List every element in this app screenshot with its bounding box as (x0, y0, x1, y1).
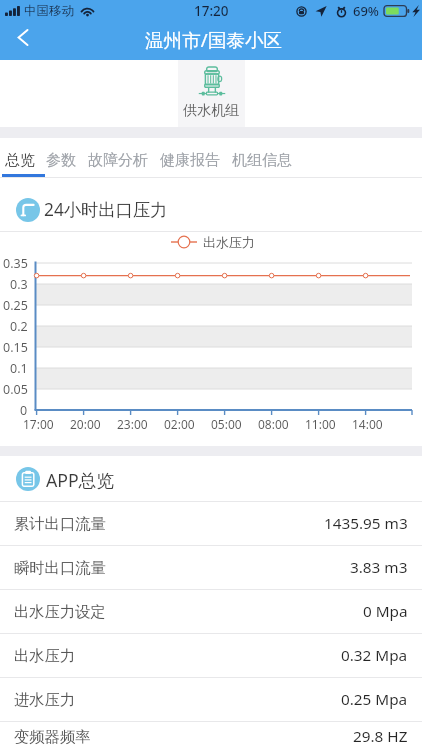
staticText: 0 (20, 402, 28, 418)
staticText: 温州市/国泰小区 (145, 27, 283, 52)
button[interactable]: 瞬时出口流量 (0, 546, 422, 589)
staticText: 20:00 (70, 416, 101, 431)
staticText: 健康报告 (160, 151, 220, 170)
staticText: 3.83 m3 (350, 557, 408, 578)
staticText: 69% (353, 2, 379, 20)
button[interactable]: 进水压力 (0, 678, 422, 721)
button[interactable]: 故障分析 (82, 138, 154, 178)
staticText: 故障分析 (88, 151, 148, 170)
staticText: 出水压力 (203, 234, 255, 250)
staticText: 24小时出口压力 (44, 198, 168, 222)
staticText: 0.2 (10, 318, 28, 334)
button[interactable]: 机组信息 (226, 138, 298, 178)
staticText: 08:00 (258, 416, 289, 431)
staticText: 机组信息 (232, 151, 292, 170)
staticText: 14:00 (352, 416, 383, 431)
staticText: 17:20 (194, 2, 229, 20)
staticText: 11:00 (305, 416, 336, 431)
button[interactable]: Back (0, 18, 45, 56)
staticText: 0.25 Mpa (341, 689, 408, 710)
staticText: 累计出口流量 (14, 514, 106, 533)
button[interactable]: 总览 (0, 138, 40, 178)
staticText: 0.3 (10, 276, 28, 292)
staticText: 17:00 (23, 416, 54, 431)
staticText: 中国移动 (24, 3, 74, 19)
button[interactable]: 参数 (40, 138, 82, 178)
staticText: 进水压力 (14, 690, 76, 709)
staticText: 0.1 (10, 360, 28, 376)
staticText: 0 Mpa (363, 601, 408, 622)
staticText: 供水机组 (183, 101, 240, 119)
staticText: 出水压力设定 (14, 602, 106, 621)
staticText: 02:00 (164, 416, 195, 431)
staticText: 参数 (46, 151, 76, 170)
button[interactable]: 出水压力 (0, 634, 422, 677)
button[interactable]: 出水压力设定 (0, 590, 422, 633)
button[interactable]: 变频器频率 (0, 722, 422, 750)
staticText: 出水压力 (14, 646, 76, 665)
button[interactable]: 供水机组 (178, 60, 245, 127)
staticText: 29.8 HZ (353, 726, 408, 747)
staticText: 0.15 (3, 339, 28, 355)
staticText: 1435.95 m3 (324, 513, 408, 534)
staticText: 变频器频率 (14, 727, 91, 746)
button[interactable]: 健康报告 (154, 138, 226, 178)
staticText: 总览 (5, 151, 35, 170)
staticText: 0.25 (3, 297, 28, 313)
staticText: 瞬时出口流量 (14, 558, 106, 577)
button[interactable]: 累计出口流量 (0, 502, 422, 545)
staticText: 0.05 (3, 381, 28, 397)
staticText: 05:00 (211, 416, 242, 431)
staticText: 0.32 Mpa (341, 645, 408, 666)
staticText: 23:00 (117, 416, 148, 431)
staticText: APP总览 (46, 468, 115, 492)
staticText: 0.35 (3, 255, 28, 271)
